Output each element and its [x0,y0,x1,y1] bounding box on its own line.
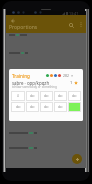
staticText: abc [58,105,63,109]
button[interactable]: abc [26,102,39,112]
button[interactable] [9,52,89,55]
button[interactable]: Add [72,154,82,164]
staticText: abc [72,94,77,98]
staticText: × [71,73,74,78]
staticText: 4 [17,94,19,98]
button[interactable] [9,132,89,135]
button[interactable]: abc [54,102,67,112]
staticText: abc [16,105,21,109]
button[interactable]: Training [9,69,83,121]
button[interactable]: More options [76,20,85,29]
button[interactable]: abc [68,91,81,101]
button[interactable]: Navigate up [8,16,17,25]
button[interactable] [68,102,81,112]
staticText: Training [12,73,30,79]
staticText: abc [58,94,63,98]
button[interactable]: abc [11,102,25,112]
button[interactable] [9,34,89,37]
staticText: 13:41 [69,11,79,15]
staticText: sabre · opp/kpqzh [12,80,50,86]
button[interactable]: abc [26,91,39,101]
button[interactable]: abc [40,102,53,112]
button[interactable]: abc [40,91,53,101]
staticText: tchfaw somebody or something [12,85,57,89]
staticText: abc [30,105,35,109]
staticText: abc [44,105,49,109]
button[interactable]: Search [66,20,76,30]
staticText: abc [30,94,35,98]
button[interactable] [9,147,89,150]
staticText: abc [44,94,49,98]
staticText: Proportions [9,24,38,31]
button[interactable]: 4 [11,91,25,101]
button[interactable]: abc [54,91,67,101]
staticText: 1 [70,80,73,85]
staticText: 282 [63,73,69,78]
